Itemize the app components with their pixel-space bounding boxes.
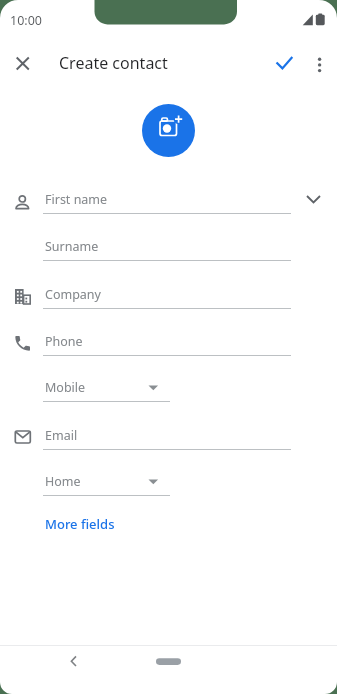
button[interactable]: Mobile bbox=[43, 356, 170, 402]
staticText: More fields bbox=[45, 515, 115, 533]
staticText: Company bbox=[45, 286, 101, 303]
staticText: Surname bbox=[45, 238, 99, 255]
button[interactable] bbox=[9, 50, 36, 77]
staticText: Email bbox=[45, 427, 78, 444]
button[interactable] bbox=[306, 50, 334, 78]
button[interactable]: Phone bbox=[43, 310, 291, 356]
button[interactable]: Home bbox=[43, 450, 170, 496]
staticText: 10:00 bbox=[10, 12, 42, 29]
button[interactable] bbox=[300, 185, 327, 212]
button[interactable]: First name bbox=[43, 168, 291, 214]
staticText: Mobile bbox=[45, 379, 86, 396]
button[interactable] bbox=[58, 648, 88, 678]
staticText: Home bbox=[45, 473, 81, 490]
button[interactable]: Company bbox=[43, 263, 291, 309]
button[interactable] bbox=[270, 50, 298, 78]
staticText: Create contact bbox=[59, 52, 168, 74]
button[interactable]: More fields bbox=[43, 512, 133, 538]
button[interactable]: Email bbox=[43, 404, 291, 450]
button[interactable] bbox=[142, 104, 195, 157]
staticText: First name bbox=[45, 191, 108, 208]
button[interactable]: Surname bbox=[43, 215, 291, 261]
staticText: Phone bbox=[45, 333, 83, 350]
